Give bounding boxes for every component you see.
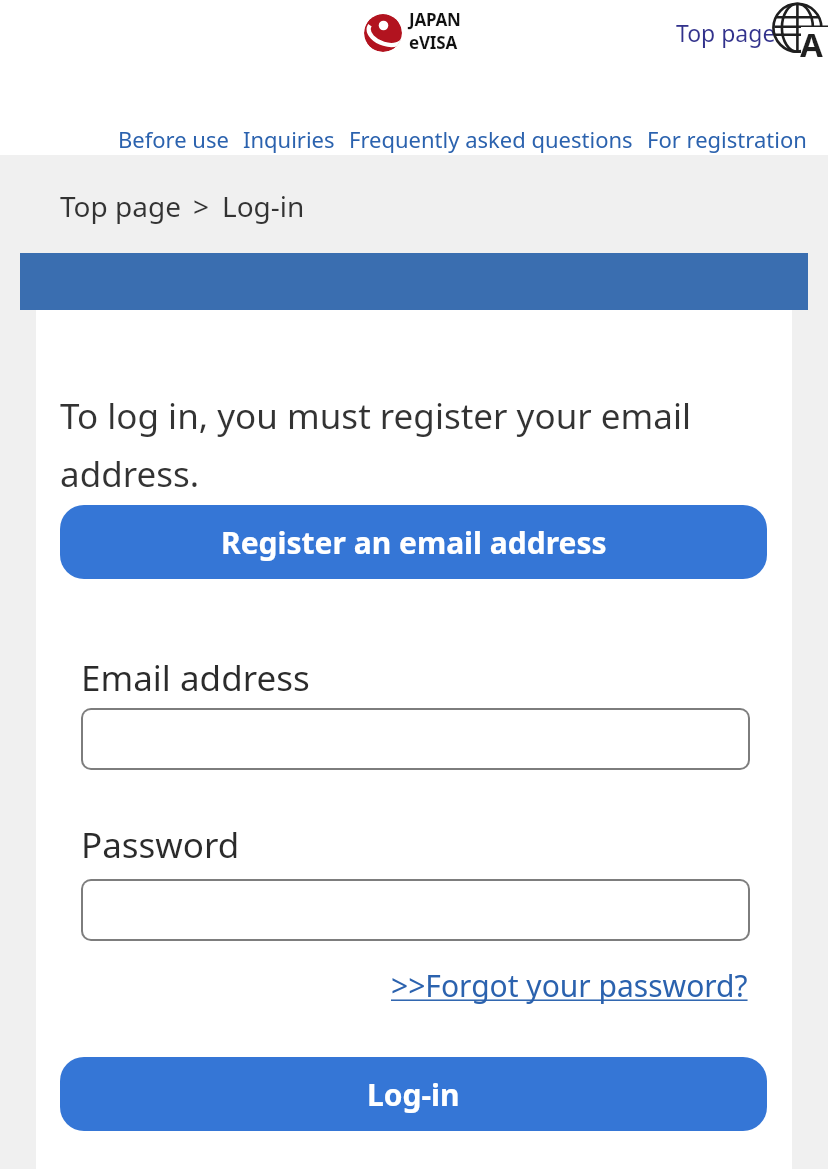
staticText: Register an email address — [221, 522, 607, 563]
staticText: A — [800, 22, 823, 67]
button[interactable]: Top page — [60, 187, 181, 225]
staticText: > — [193, 187, 210, 225]
button[interactable]: Log-in — [60, 1057, 767, 1131]
staticText: To log in, you must register your email … — [60, 392, 691, 497]
staticText: Log-in — [367, 1074, 460, 1115]
button[interactable]: For registration — [647, 124, 807, 154]
button[interactable] — [773, 1, 828, 59]
button[interactable]: Inquiries — [243, 124, 335, 154]
button[interactable]: Top page — [676, 17, 776, 48]
button[interactable]: >>Forgot your password? — [391, 965, 748, 1006]
button[interactable]: JAPAN — [362, 8, 461, 54]
button[interactable]: Register an email address — [60, 505, 767, 579]
button[interactable]: Frequently asked questions — [349, 124, 633, 154]
staticText: eVISA — [409, 31, 457, 54]
button[interactable] — [81, 879, 750, 941]
staticText: JAPAN — [409, 8, 461, 31]
button[interactable] — [81, 708, 750, 770]
staticText: Email address — [81, 654, 310, 702]
staticText: Password — [81, 821, 240, 869]
staticText: Log-in — [222, 187, 305, 225]
staticText: Top page — [676, 17, 776, 48]
button[interactable]: Before use — [118, 124, 229, 154]
